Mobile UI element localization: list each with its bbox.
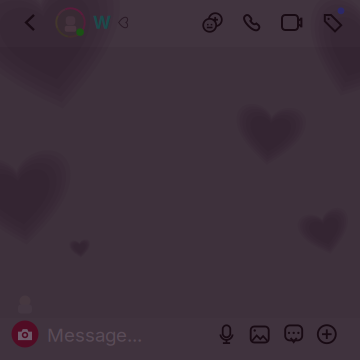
button[interactable]: Add friends [195,4,229,40]
button[interactable]: Voice message [211,317,241,351]
button[interactable]: Stickers [316,5,350,41]
button[interactable]: Back [12,2,48,42]
button[interactable]: Call [235,4,269,40]
button[interactable]: W [55,2,129,42]
button[interactable]: Message... [47,317,187,353]
staticText: W [93,12,111,33]
button[interactable]: More options [312,317,342,351]
button[interactable]: Video call [275,4,309,40]
button[interactable]: Camera [5,314,45,354]
staticText: Message... [47,324,142,346]
button[interactable]: Photos [245,317,275,351]
button[interactable]: Stickers [279,317,309,351]
